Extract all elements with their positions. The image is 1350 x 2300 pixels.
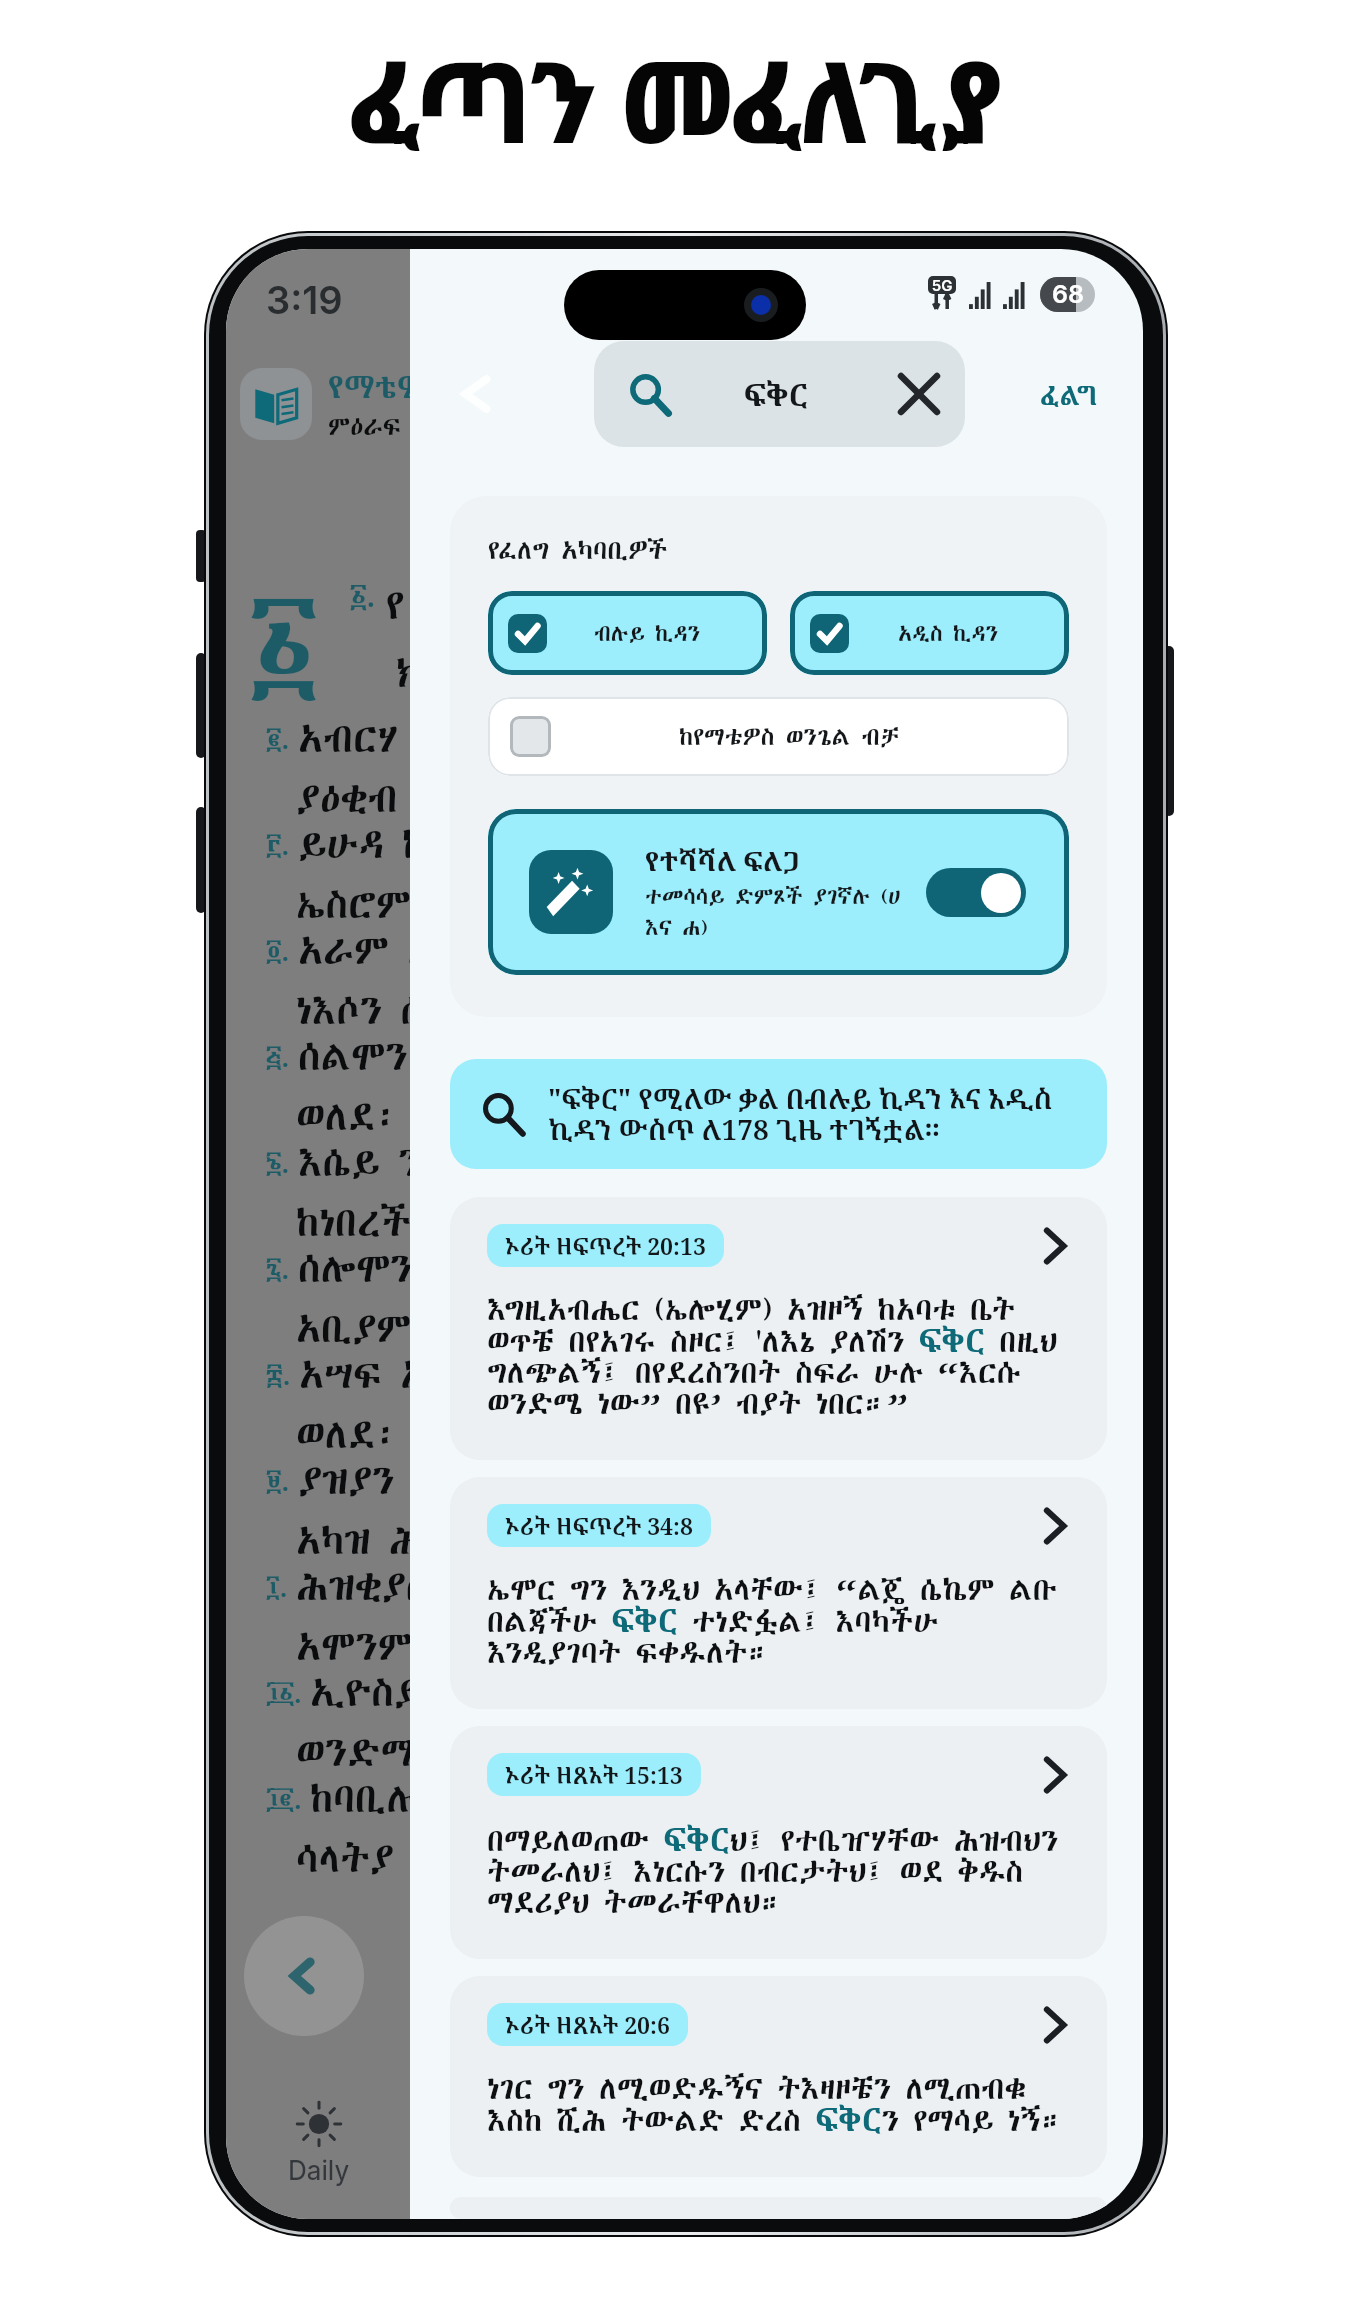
staticText: ምዕራፍ ፩	[328, 409, 410, 443]
staticText: ሰልሞን	[298, 1029, 408, 1083]
staticText: ክ	[396, 645, 410, 701]
staticText: Daily	[288, 2155, 350, 2186]
staticText: ፩	[250, 567, 318, 720]
staticText: ኦሪት ዘጸአት 15:13	[505, 1759, 683, 1790]
staticText: ኦሪት ዘፍጥረት 20:13	[505, 1230, 706, 1261]
button[interactable]: አዲስ ኪዳን	[790, 591, 1069, 675]
staticText: ያዝያን	[298, 1453, 395, 1507]
staticText: ኤስሮም	[296, 877, 410, 923]
staticText: ፩.	[350, 577, 376, 615]
staticText: ሰሎሞን	[298, 1241, 410, 1295]
staticText: ወንድማ	[296, 1725, 410, 1771]
staticText: ወለደ፡	[296, 1089, 399, 1135]
button[interactable]: ኦሪት ዘፍጥረት 34:8	[450, 1477, 1107, 1709]
staticText: 68	[1052, 279, 1084, 309]
button[interactable]: ፈልግ	[1026, 359, 1112, 430]
button[interactable]: ኦሪት ዘጸአት 15:13	[450, 1726, 1107, 1959]
staticText: ፭.	[266, 1039, 290, 1074]
staticText: እግዚአብሔር (ኤሎሂም) አዝዞኝ ከአባቱ ቤት ወጥቼ በየአገሩ ስዞ…	[487, 1288, 1075, 1425]
staticText: ኤሞር ግን እንዲህ አላቸው፤ “ልጄ ሴኬም ልቡ በልጃችሁ ፍቅር ተ…	[487, 1568, 1075, 1674]
staticText: ፱.	[266, 1463, 290, 1498]
staticText: "ፍቅር" የሚለው ቃል በብሉይ ኪዳን እና አዲስ ኪዳን ውስጥ ለ1…	[548, 1079, 1079, 1149]
staticText: ፯.	[266, 1251, 290, 1286]
staticText: ፮.	[266, 1145, 290, 1180]
staticText: ፈልግ	[1040, 377, 1098, 412]
staticText: ሕዝቂያስ	[296, 1559, 410, 1613]
staticText: አብርሃ	[298, 711, 398, 765]
staticText: ነእሶን ሰ	[296, 983, 410, 1029]
staticText: ኦሪት ዘፍጥረት 34:8	[505, 1510, 693, 1541]
staticText: ፫.	[266, 827, 290, 862]
staticText: 3:19	[266, 277, 343, 323]
staticText: አካዝ ሕ	[296, 1513, 410, 1559]
staticText: ፍቅር	[744, 373, 809, 415]
button[interactable]: ኦሪት ዘጸአት 20:6	[450, 1976, 1107, 2177]
staticText: አቢያም	[296, 1301, 410, 1347]
button[interactable]: "ፍቅር" የሚለው ቃል በብሉይ ኪዳን እና አዲስ ኪዳን ውስጥ ለ1…	[450, 1059, 1107, 1169]
staticText: ሳላትያ	[296, 1831, 394, 1877]
staticText: በማይለወጠው ፍቅርህ፤ የተቤዠሃቸው ሕዝብህን ትመራለህ፤ እነርሱን…	[487, 1817, 1075, 1924]
staticText: ይሁዳ ከ	[298, 817, 410, 871]
staticText: የ	[386, 577, 405, 633]
staticText: አራም አ	[298, 923, 410, 977]
staticText: ከነበረች	[296, 1195, 410, 1241]
staticText: ፰.	[266, 1357, 291, 1392]
staticText: አሣፍ ኢ	[299, 1347, 410, 1401]
staticText: ያዕቂብ	[296, 771, 398, 817]
button[interactable]: ከየማቴዎስ ወንጌል ብቻ	[488, 697, 1069, 776]
button[interactable]: የተሻሻለ ፍለጋ	[488, 809, 1069, 975]
button[interactable]: Clear search	[899, 374, 939, 414]
staticText: ፲፩.	[266, 1675, 302, 1710]
staticText: 5G	[932, 276, 953, 294]
staticText: አዲስ ኪዳን	[898, 618, 999, 649]
staticText: የተሻሻለ ፍለጋ	[645, 842, 801, 879]
button[interactable]: Previous chapter	[244, 1916, 364, 2036]
staticText: ፲.	[266, 1569, 288, 1604]
staticText: ፪.	[266, 721, 290, 756]
staticText: እሴይ ን	[298, 1135, 410, 1189]
button[interactable]: ብሉይ ኪዳን	[488, 591, 767, 675]
staticText: ከየማቴዎስ ወንጌል ብቻ	[679, 720, 899, 753]
staticText: ነገር ግን ለሚወድዱኝና ትእዛዞቼን ለሚጠብቁ እስከ ሺሕ ትውልድ …	[487, 2067, 1075, 2142]
button[interactable]: Toggle enhanced search	[926, 868, 1026, 917]
staticText: የማቴዎስ	[328, 366, 410, 407]
staticText: ፈጣን መፈለጊያ	[348, 22, 1002, 176]
staticText: ተመሳሳይ ድምጾች ያገኛሉ (ሀ እና ሐ)	[645, 881, 926, 943]
staticText: ብሉይ ኪዳን	[594, 618, 700, 649]
staticText: ከባቢሉ	[310, 1771, 410, 1825]
staticText: ኦሪት ዘጸአት 20:6	[505, 2009, 670, 2040]
staticText: ኢዮስያ	[310, 1665, 410, 1719]
button[interactable]: ፍቅር	[594, 341, 965, 447]
staticText: ወለደ፡	[296, 1407, 399, 1453]
staticText: ፲፪.	[266, 1781, 302, 1816]
staticText: የፈለግ አካባቢዎች	[488, 532, 668, 568]
staticText: አሞንም	[296, 1619, 410, 1665]
staticText: ፬.	[266, 933, 290, 968]
button[interactable]: ኦሪት ዘፍጥረት 20:13	[450, 1197, 1107, 1460]
